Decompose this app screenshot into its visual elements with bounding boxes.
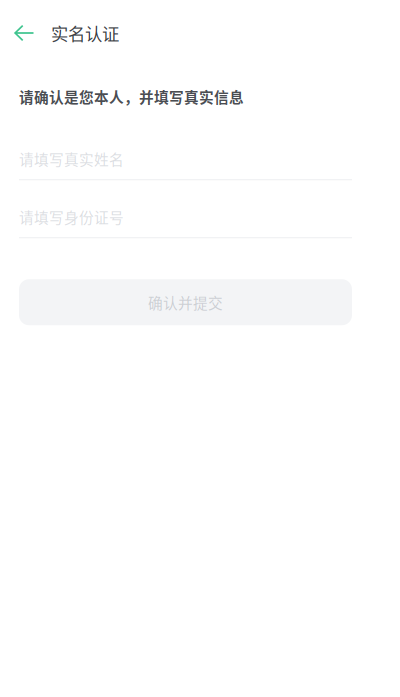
staticText: 确认并提交: [148, 292, 223, 313]
button[interactable]: 实名认证: [45, 20, 119, 46]
staticText: 请填写真实姓名: [19, 148, 124, 169]
button[interactable]: 确认并提交: [19, 279, 352, 325]
button[interactable]: 返回: [3, 11, 45, 55]
staticText: 实名认证: [51, 20, 119, 46]
staticText: 请确认是您本人，并填写真实信息: [19, 86, 244, 107]
staticText: 请填写身份证号: [19, 206, 124, 227]
